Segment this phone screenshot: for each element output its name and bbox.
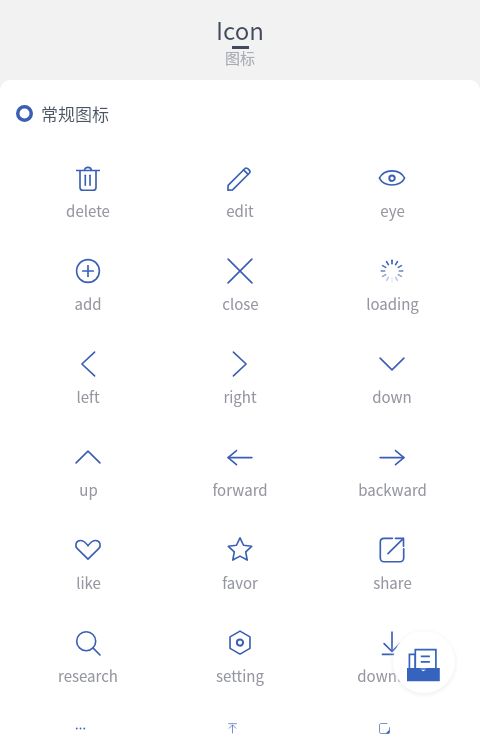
button[interactable]: close	[164, 245, 316, 338]
button[interactable]: eye	[316, 152, 468, 245]
button[interactable]: share	[316, 524, 468, 617]
button[interactable]: loading	[316, 245, 468, 338]
button[interactable]: delete	[12, 152, 164, 245]
button[interactable]: right	[164, 338, 316, 431]
button[interactable]: more	[12, 710, 164, 734]
button[interactable]: upload	[164, 710, 316, 734]
staticText: share	[373, 572, 412, 594]
button[interactable]: down	[316, 338, 468, 431]
staticText: add	[74, 293, 102, 315]
staticText: up	[79, 479, 98, 501]
button[interactable]: edit	[164, 152, 316, 245]
staticText: download	[357, 665, 428, 687]
staticText: 图标	[225, 47, 256, 69]
button[interactable]: setting	[164, 617, 316, 710]
button[interactable]: Archive	[393, 631, 455, 693]
staticText: setting	[216, 665, 264, 687]
staticText: forward	[212, 479, 268, 501]
button[interactable]: like	[12, 524, 164, 617]
staticText: like	[76, 572, 101, 594]
button[interactable]: up	[12, 431, 164, 524]
staticText: edit	[226, 200, 254, 222]
staticText: down	[372, 386, 412, 408]
button[interactable]: favor	[164, 524, 316, 617]
button[interactable]: add	[12, 245, 164, 338]
button[interactable]: forward	[164, 431, 316, 524]
staticText: eye	[380, 200, 405, 222]
button[interactable]: download	[316, 617, 468, 710]
staticText: close	[222, 293, 259, 315]
button[interactable]: research	[12, 617, 164, 710]
staticText: Icon	[216, 12, 264, 47]
button[interactable]: backward	[316, 431, 468, 524]
staticText: loading	[366, 293, 419, 315]
staticText: delete	[66, 200, 110, 222]
staticText: research	[58, 665, 118, 687]
staticText: left	[76, 386, 100, 408]
button[interactable]: edit	[316, 710, 468, 734]
button[interactable]: left	[12, 338, 164, 431]
staticText: favor	[222, 572, 258, 594]
staticText: right	[223, 386, 257, 408]
staticText: 常规图标	[41, 101, 109, 126]
staticText: backward	[358, 479, 427, 501]
